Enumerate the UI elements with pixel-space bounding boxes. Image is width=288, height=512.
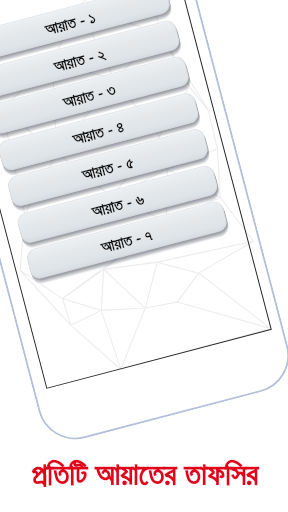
staticText: আয়াত - ৫ (79, 151, 136, 185)
staticText: আয়াত - ৬ (89, 187, 147, 222)
button[interactable]: আয়াত - ৭ (25, 199, 229, 281)
button[interactable]: আয়াত - ৪ (0, 91, 200, 172)
staticText: আয়াত - ৪ (70, 115, 127, 150)
staticText: আয়াত - ২ (51, 42, 108, 77)
staticText: প্রতিটি আয়াতের তাফসির (31, 452, 258, 494)
button[interactable]: আয়াত - ১ (0, 0, 172, 63)
staticText: আয়াত - ৩ (60, 78, 118, 113)
button[interactable]: আয়াত - ২ (0, 18, 181, 100)
button[interactable]: আয়াত - ৫ (6, 127, 210, 208)
staticText: আয়াত - ৭ (98, 223, 155, 258)
button[interactable]: আয়াত - ৩ (0, 54, 191, 136)
button[interactable]: আয়াত - ৬ (15, 164, 219, 245)
staticText: আয়াত - ১ (42, 6, 98, 40)
